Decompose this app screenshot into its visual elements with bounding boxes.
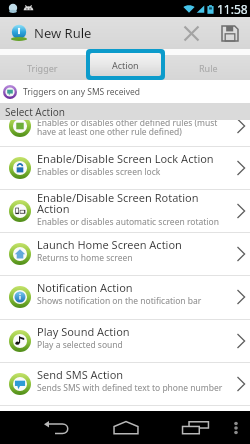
staticText: Enable/Disable Screen Rotation Action [37, 190, 199, 216]
staticText: Trigger [27, 62, 58, 74]
button[interactable]: Enable/Disable Screen Rotation Action [0, 190, 250, 233]
button[interactable]: Enable/Disable Other Rules Action [0, 104, 250, 147]
staticText: 11:58 [217, 1, 248, 17]
button[interactable]: Play Sound Action [0, 320, 250, 363]
button[interactable]: Trigger [0, 49, 84, 80]
staticText: Triggers on any SMS received [23, 86, 141, 98]
button[interactable]: Notification Action [0, 276, 250, 320]
button[interactable]: More options [222, 411, 250, 444]
staticText: Play a selected sound [37, 339, 123, 351]
staticText: Enables or disables automatic screen rot… [37, 216, 219, 228]
button[interactable]: Launch Home Screen Action [0, 233, 250, 276]
button[interactable]: Save [210, 17, 250, 49]
staticText: Notification Action [37, 280, 133, 295]
button[interactable]: Home [96, 411, 156, 444]
button[interactable]: Back [26, 411, 86, 444]
staticText: Action [112, 59, 139, 71]
staticText: Select Action [5, 105, 65, 119]
staticText: Enable/Disable Other Rules Action [37, 102, 214, 117]
staticText: Rule [199, 62, 218, 74]
staticText: Sends SMS with defined text to phone num… [37, 382, 223, 394]
button[interactable]: Action [84, 49, 167, 80]
staticText: Send SMS Action [37, 367, 124, 382]
staticText: Returns to home screen [37, 252, 133, 264]
button[interactable]: Enable/Disable Screen Lock Action [0, 147, 250, 190]
button[interactable]: Recent apps [165, 411, 225, 444]
staticText: Launch Home Screen Action [37, 237, 182, 252]
button[interactable]: Send SMS Action [0, 363, 250, 406]
button[interactable]: Rule [167, 49, 250, 80]
button[interactable]: Discard [173, 17, 210, 49]
staticText: Enables or disables screen lock [37, 166, 161, 178]
staticText: Play Sound Action [37, 324, 130, 339]
staticText: New Rule [34, 24, 92, 42]
staticText: Enable/Disable Screen Lock Action [37, 151, 214, 166]
staticText: Enables or disables other defined rules … [37, 117, 218, 138]
button[interactable]: Triggers on any SMS received [0, 80, 250, 104]
staticText: Shows notification on the notification b… [37, 295, 202, 307]
